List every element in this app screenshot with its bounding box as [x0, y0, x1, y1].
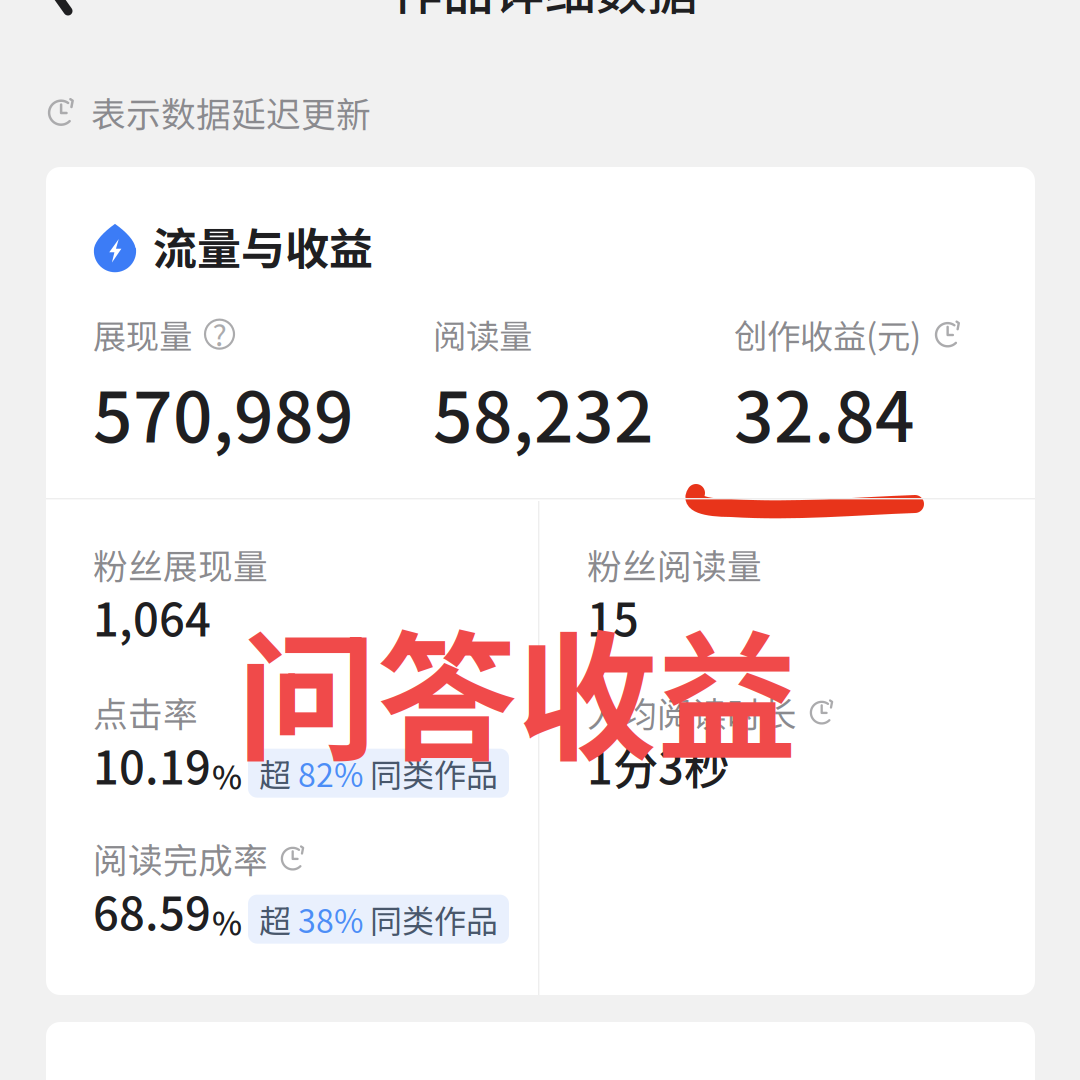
staticText: 表示数据延迟更新 — [91, 87, 371, 137]
staticText: ? — [212, 311, 226, 355]
button[interactable]: 作品详细数据 — [392, 0, 698, 8]
staticText: 超 — [259, 750, 298, 796]
staticText: 58,232 — [433, 362, 654, 462]
staticText: 1分3秒 — [587, 732, 729, 798]
staticText: 1,064 — [93, 584, 211, 650]
staticText: 68.59 — [93, 878, 211, 944]
staticText: 点击率 — [93, 687, 198, 737]
staticText: 570,989 — [93, 362, 354, 462]
staticText: 阅读完成率 — [93, 833, 268, 883]
staticText: 展现量 — [93, 310, 192, 358]
staticText: 创作收益(元) — [734, 310, 921, 358]
staticText: 人均阅读时长 — [587, 687, 797, 737]
staticText: % — [212, 898, 242, 945]
staticText: 粉丝阅读量 — [587, 539, 762, 589]
staticText: 同类作品 — [363, 750, 498, 796]
staticText: 流量与收益 — [153, 214, 373, 278]
staticText: 38% — [298, 896, 363, 942]
staticText: 10.19 — [93, 732, 211, 798]
staticText: 15 — [587, 584, 639, 650]
staticText: 粉丝展现量 — [93, 539, 268, 589]
staticText: 作品详细数据 — [392, 0, 698, 25]
staticText: 82% — [298, 750, 363, 796]
staticText: 超 — [259, 896, 298, 942]
staticText: % — [212, 752, 242, 799]
staticText: 阅读量 — [433, 310, 532, 358]
button[interactable]: 返回 — [0, 0, 96, 26]
staticText: 同类作品 — [363, 896, 498, 942]
staticText: 问答收益 — [237, 587, 797, 790]
staticText: 32.84 — [734, 362, 915, 462]
